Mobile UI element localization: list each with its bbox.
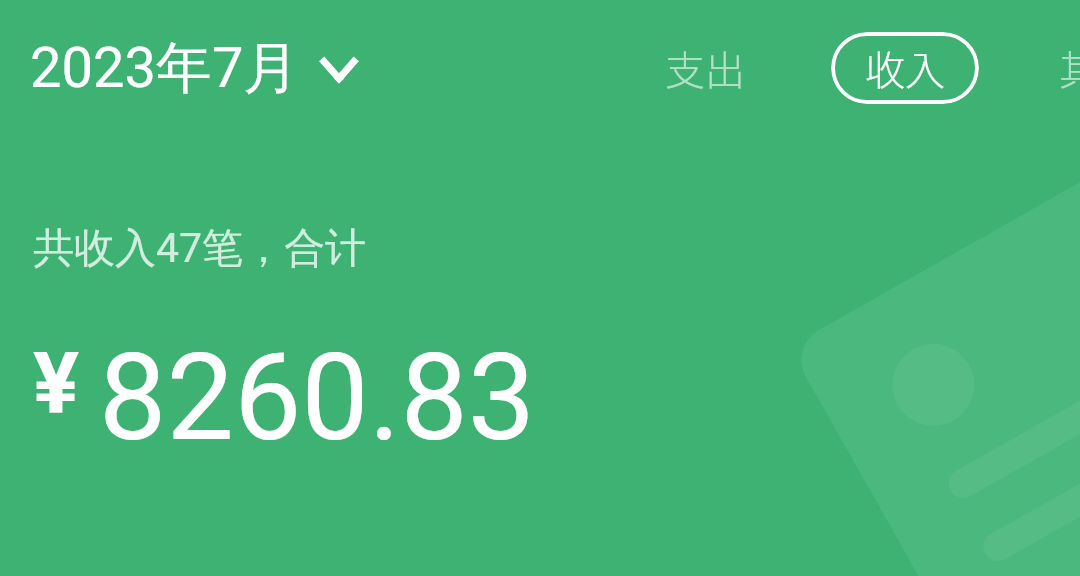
button[interactable]: 2023年7月	[24, 33, 365, 104]
staticText: 其他	[1059, 39, 1080, 97]
staticText: 收入	[865, 39, 945, 97]
button[interactable]: 支出	[641, 23, 769, 113]
staticText: 支出	[665, 39, 745, 97]
button[interactable]: 收入	[831, 32, 979, 104]
staticText: 2023年7月	[30, 33, 300, 104]
staticText: 8260.83	[99, 328, 536, 469]
staticText: ¥	[33, 333, 80, 434]
button[interactable]: 其他	[1035, 23, 1080, 113]
staticText: 共收入47笔，合计	[33, 223, 367, 275]
